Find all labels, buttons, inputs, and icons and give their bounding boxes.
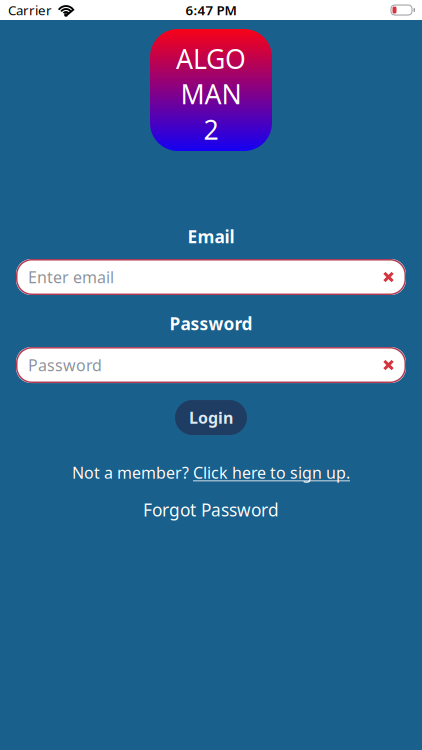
staticText: Click here to sign up.	[193, 462, 350, 483]
staticText: Carrier	[8, 1, 52, 19]
staticText: Not a member?	[72, 462, 193, 483]
staticText: 6:47 PM	[185, 1, 236, 19]
button[interactable]: Forgot Password	[143, 498, 279, 521]
staticText: Email	[187, 225, 234, 248]
staticText: Enter email	[28, 266, 114, 288]
staticText: Login	[189, 407, 233, 428]
staticText: Forgot Password	[143, 498, 279, 521]
staticText: ALGO	[176, 41, 246, 76]
staticText: MAN	[180, 76, 241, 112]
button[interactable]	[379, 355, 398, 374]
staticText: Password	[169, 312, 252, 335]
staticText: Password	[28, 354, 102, 376]
button[interactable]	[379, 267, 398, 286]
button[interactable]: Password	[0, 347, 422, 383]
button[interactable]: Login	[175, 400, 247, 435]
staticText: 2	[203, 112, 218, 147]
button[interactable]: Enter email	[0, 259, 422, 295]
button[interactable]: Click here to sign up.	[193, 462, 350, 483]
